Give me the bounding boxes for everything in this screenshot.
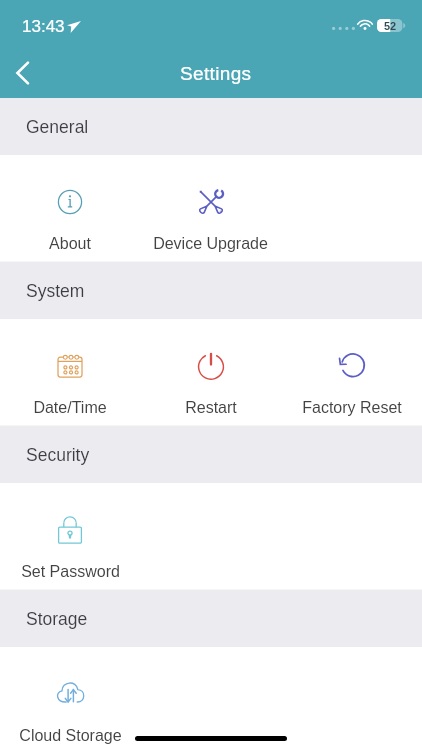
button[interactable]: Device Upgrade	[140, 155, 281, 261]
button[interactable]: Set Password	[0, 483, 140, 589]
staticText: About	[49, 235, 91, 253]
staticText: 13:43	[22, 17, 65, 36]
staticText: Date/Time	[33, 399, 107, 417]
staticText: Restart	[185, 399, 237, 417]
button[interactable]: Cloud Storage	[0, 647, 140, 750]
staticText: General	[26, 117, 89, 137]
staticText: Cloud Storage	[19, 727, 122, 745]
staticText: Security	[26, 445, 90, 465]
staticText: Factory Reset	[302, 399, 402, 417]
button[interactable]: Restart	[140, 319, 281, 425]
staticText: Device Upgrade	[153, 235, 268, 253]
staticText: 52	[384, 20, 397, 32]
staticText: Settings	[180, 63, 252, 84]
staticText: System	[26, 281, 85, 301]
staticText: Set Password	[21, 563, 120, 581]
button[interactable]: About	[0, 155, 140, 261]
staticText: Storage	[26, 609, 88, 629]
button[interactable]: Factory Reset	[281, 319, 422, 425]
button[interactable]: Back	[0, 48, 44, 98]
button[interactable]: Date/Time	[0, 319, 140, 425]
